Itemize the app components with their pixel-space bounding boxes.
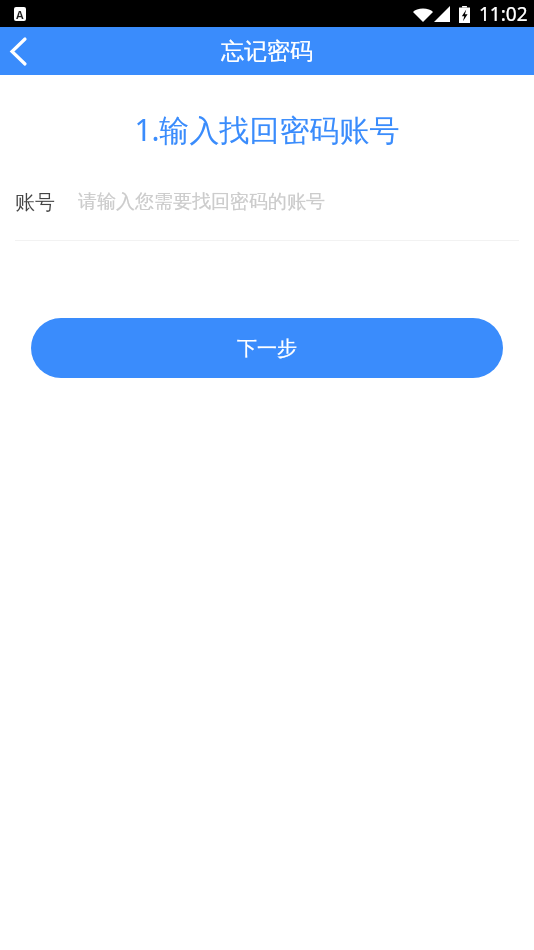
- staticText: 忘记密码: [221, 37, 313, 66]
- button[interactable]: 下一步: [31, 318, 503, 378]
- staticText: 下一步: [237, 336, 297, 361]
- staticText: 11:02: [479, 1, 528, 27]
- staticText: 1.输入找回密码账号: [0, 109, 534, 150]
- staticText: 请输入您需要找回密码的账号: [78, 190, 325, 214]
- button[interactable]: 账号: [0, 187, 534, 217]
- staticText: A: [16, 7, 24, 21]
- button[interactable]: Back: [0, 27, 44, 75]
- staticText: 账号: [15, 190, 55, 215]
